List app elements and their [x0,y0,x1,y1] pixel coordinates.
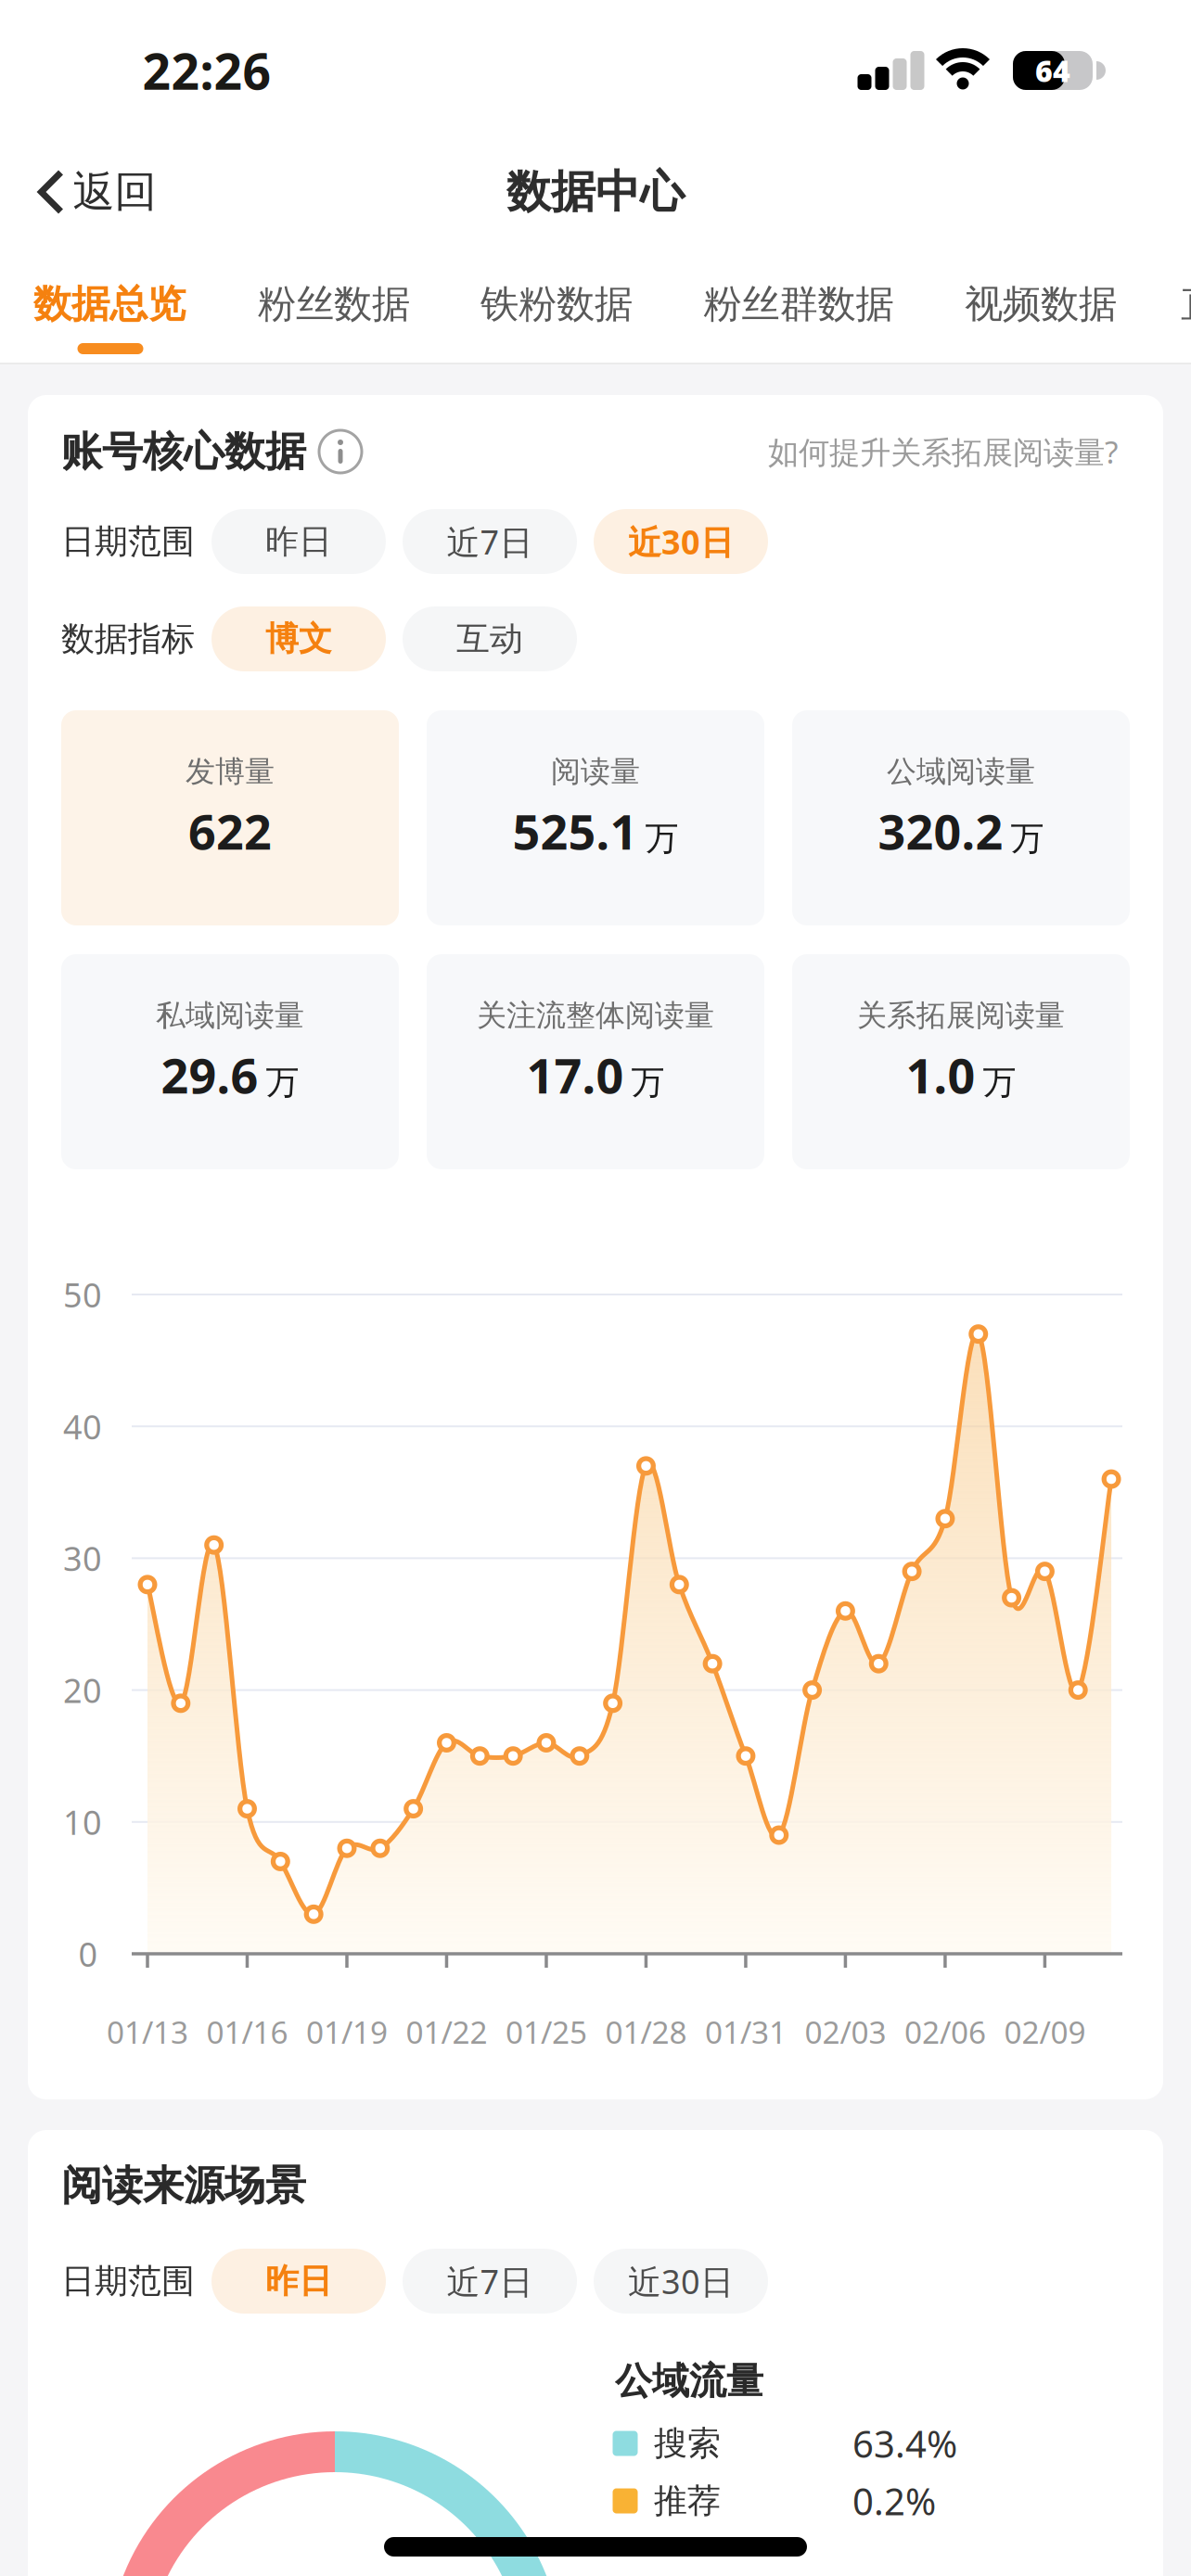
staticText: 粉丝数据 [258,281,410,328]
staticText: 铁粉数据 [480,281,633,328]
button[interactable]: 近30日 [594,509,768,574]
staticText: 数据指标 [61,618,195,659]
button[interactable]: 博文 [211,606,386,671]
staticText: 64 [1035,51,1070,90]
staticText: 10 [63,1800,102,1844]
button[interactable]: 近7日 [403,509,577,574]
staticText: 01/28 [605,2011,687,2052]
staticText: 关注流整体阅读量 [477,997,714,1034]
staticText: 粉丝群数据 [704,281,894,328]
staticText: 622 [188,799,272,863]
button[interactable]: 近30日 [594,2249,768,2314]
staticText: 博文 [265,618,332,659]
staticText: 万 [631,1062,665,1103]
staticText: 01/13 [107,2011,188,2052]
staticText: 01/25 [506,2011,587,2052]
staticText: 01/22 [406,2011,487,2052]
staticText: 01/19 [306,2011,388,2052]
button[interactable]: 返回 [38,166,156,218]
staticText: 公域阅读量 [887,753,1035,790]
staticText: 近7日 [447,519,533,564]
staticText: 昨日 [265,2261,332,2302]
staticText: 搜索 [654,2423,721,2464]
button[interactable]: 铁粉数据 [480,281,633,328]
staticText: 30 [63,1536,102,1580]
staticText: 阅读量 [551,753,640,790]
button[interactable]: 昨日 [211,2249,386,2314]
staticText: 万 [983,1062,1016,1103]
staticText: 29.6 [161,1043,258,1107]
staticText: 01/16 [206,2011,288,2052]
staticText: 0.2% [852,2476,936,2525]
staticText: 发博量 [186,753,275,790]
staticText: 63.4% [852,2419,957,2468]
staticText: 320.2 [878,799,1003,863]
staticText: 推荐 [654,2480,721,2521]
staticText: 万 [1011,818,1044,859]
button[interactable]: 粉丝群数据 [704,281,894,328]
button[interactable]: 互动 [403,606,577,671]
staticText: 关系拓展阅读量 [857,997,1065,1034]
staticText: 近7日 [447,2259,533,2303]
staticText: 02/03 [805,2011,886,2052]
staticText: 万 [645,818,679,859]
staticText: 直播数据 [1181,281,1191,328]
staticText: 02/09 [1004,2011,1086,2052]
staticText: 1.0 [906,1043,975,1107]
staticText: 私域阅读量 [156,997,304,1034]
staticText: 互动 [456,618,523,659]
button[interactable]: 粉丝数据 [258,281,410,328]
staticText: 50 [63,1272,102,1317]
staticText: 昨日 [265,521,332,562]
staticText: 如何提升关系拓展阅读量? [768,431,1118,472]
staticText: 视频数据 [965,281,1117,328]
staticText: 数据中心 [506,165,685,219]
staticText: 17.0 [526,1043,624,1107]
staticText: 日期范围 [61,521,195,562]
staticText: 公域流量 [615,2358,763,2404]
staticText: 22:26 [142,38,271,103]
staticText: 20 [63,1668,102,1712]
button[interactable]: 说明 [319,430,362,473]
staticText: 525.1 [512,799,638,863]
button[interactable]: 近7日 [403,2249,577,2314]
staticText: 返回 [73,166,156,218]
staticText: 0 [78,1932,98,1976]
staticText: 数据总览 [33,281,186,328]
button[interactable]: 数据总览 [33,281,186,328]
button[interactable]: 直播数据 [1181,281,1191,328]
staticText: 阅读来源场景 [61,2161,306,2211]
button[interactable]: 如何提升关系拓展阅读量? [768,431,1118,472]
staticText: 02/06 [904,2011,986,2052]
staticText: 近30日 [628,2259,734,2303]
button[interactable]: 昨日 [211,509,386,574]
staticText: 账号核心数据 [61,427,306,477]
staticText: 近30日 [628,519,734,564]
staticText: 日期范围 [61,2261,195,2302]
staticText: 40 [63,1404,102,1449]
staticText: 万 [266,1062,299,1103]
staticText: 01/31 [705,2011,786,2052]
button[interactable]: 视频数据 [965,281,1117,328]
